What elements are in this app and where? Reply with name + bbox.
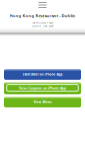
staticText: View Coupons on iPhone App [19, 86, 66, 90]
staticText: 108 Hillcrest Pkwy [32, 21, 53, 24]
button[interactable]: View Coupons on iPhone App [4, 82, 81, 94]
button[interactable]: Menu [30, 2, 54, 8]
staticText: Start Order on iPhone App [22, 72, 62, 77]
button[interactable]: View Menu [4, 97, 81, 107]
staticText: View Menu [33, 100, 51, 104]
staticText: Dublin, GA 31021 [31, 24, 53, 28]
staticText: Hong Kong Restaurant - Dublin [9, 13, 75, 18]
button[interactable]: Start Order on iPhone App [4, 69, 81, 80]
